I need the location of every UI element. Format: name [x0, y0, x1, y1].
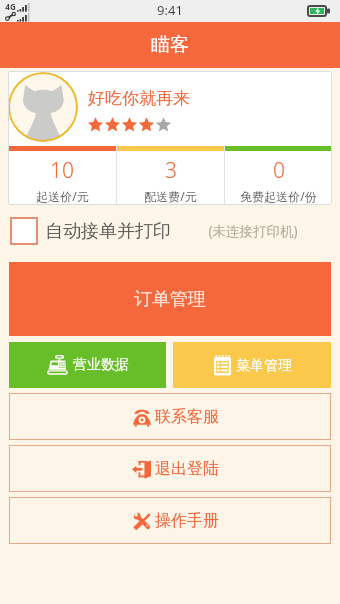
button[interactable]: 联系客服 [9, 393, 331, 440]
staticText: 自动接单并打印 [45, 220, 171, 243]
other: 自动接单并打印 [10, 217, 38, 245]
button[interactable]: 10 [8, 146, 116, 205]
button[interactable]: 退出登陆 [9, 445, 331, 492]
staticText: 10 [50, 156, 74, 185]
staticText: 4G [5, 1, 16, 12]
button[interactable]: 菜单管理 [173, 342, 331, 388]
button[interactable]: 0 [225, 146, 332, 205]
staticText: 联系客服 [155, 407, 219, 427]
staticText: 操作手册 [155, 511, 219, 531]
staticText: 好吃你就再来 [88, 88, 190, 109]
button[interactable]: 瞄客 [0, 22, 340, 68]
button[interactable]: 自动接单并打印 [10, 217, 298, 245]
staticText: 3 [165, 156, 177, 185]
button[interactable]: 3 [117, 146, 224, 205]
button[interactable]: 操作手册 [9, 497, 331, 544]
staticText: 9:41 [157, 1, 183, 19]
button[interactable]: 营业数据 [9, 342, 166, 388]
staticText: 免费起送价/份 [240, 188, 317, 204]
staticText: 起送价/元 [36, 188, 89, 204]
button[interactable]: 订单管理 [9, 262, 331, 336]
staticText: (未连接打印机) [208, 222, 298, 240]
staticText: 瞄客 [151, 33, 189, 57]
staticText: 0 [273, 156, 285, 185]
staticText: 菜单管理 [236, 357, 292, 375]
staticText: 订单管理 [134, 288, 206, 311]
staticText: 退出登陆 [155, 459, 219, 479]
staticText: 营业数据 [73, 356, 129, 374]
staticText: 配送费/元 [144, 188, 197, 204]
